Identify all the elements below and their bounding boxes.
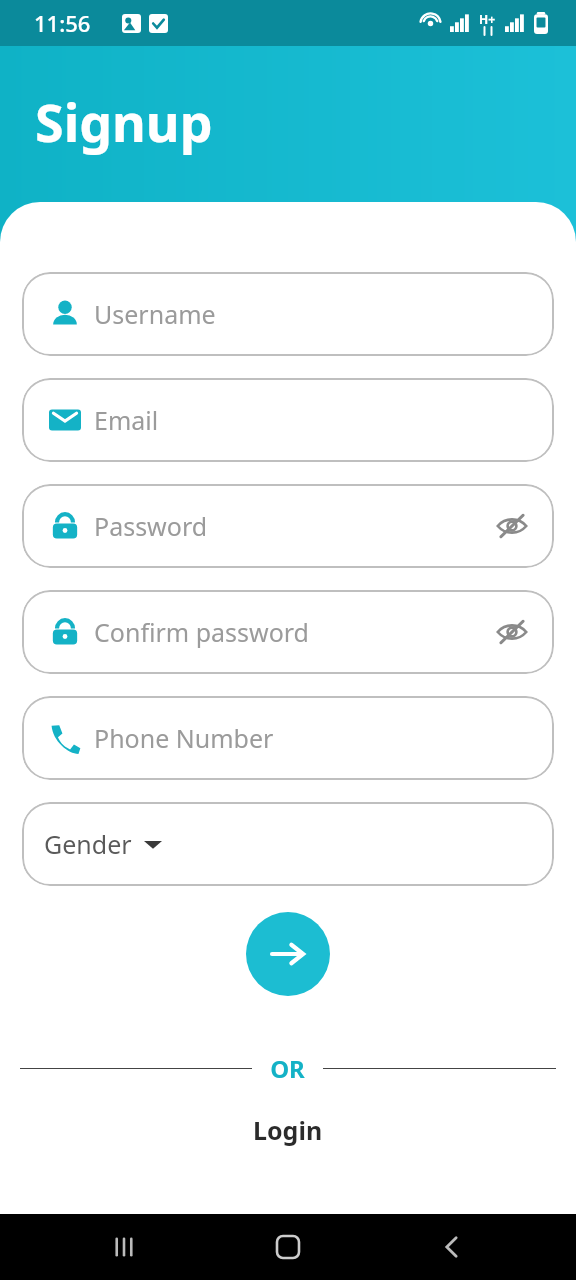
button[interactable]: Login [229,1107,347,1153]
button[interactable]: Confirm password [22,590,554,674]
staticText: 11:56 [34,8,91,38]
button[interactable]: Username [22,272,554,356]
button[interactable]: Password [22,484,554,568]
staticText: Email [94,403,534,437]
button[interactable]: Gender [22,802,554,886]
button[interactable]: Recent apps [100,1223,148,1271]
staticText: Phone Number [94,721,534,755]
button[interactable]: Back [428,1223,476,1271]
button[interactable]: Email [22,378,554,462]
staticText: Gender [44,827,132,861]
button[interactable]: Home [264,1223,312,1271]
staticText: Confirm password [94,615,490,649]
staticText: H+ [479,11,496,27]
staticText: Login [253,1113,323,1147]
button[interactable]: Toggle password visibility [490,504,534,548]
staticText: Username [94,297,534,331]
staticText: Password [94,509,490,543]
button[interactable]: Toggle password visibility [490,610,534,654]
button[interactable]: Phone Number [22,696,554,780]
staticText: OR [270,1052,305,1085]
staticText: Signup [35,86,213,157]
button[interactable]: Submit signup [246,912,330,996]
